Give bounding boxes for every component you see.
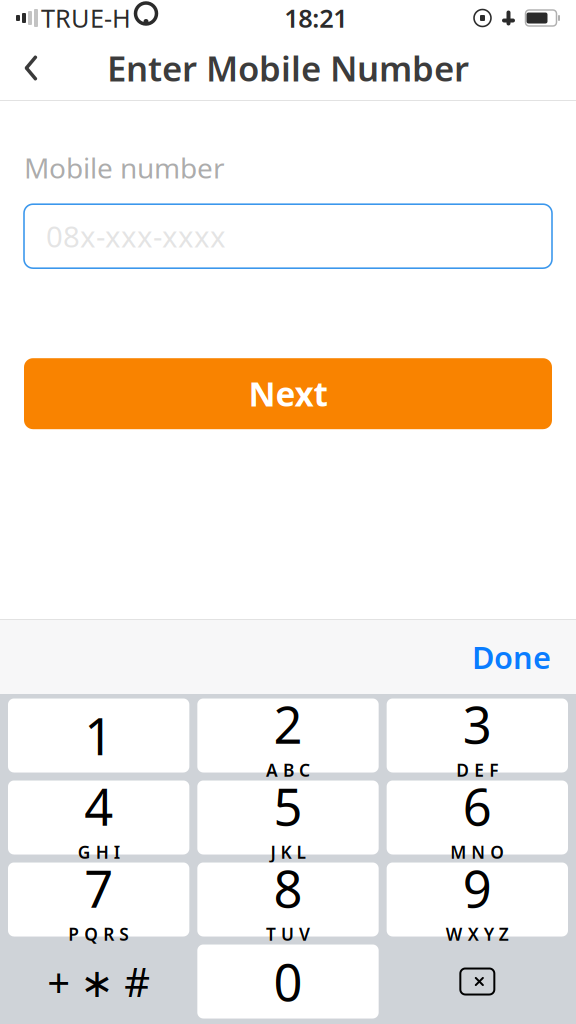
staticText: Next: [248, 372, 327, 416]
button[interactable]: Next: [24, 358, 552, 429]
staticText: W X Y Z: [446, 923, 509, 946]
staticText: 18:21: [284, 1, 347, 35]
staticText: G H I: [78, 841, 120, 864]
button[interactable]: Back: [0, 37, 62, 99]
staticText: 3: [463, 690, 492, 758]
staticText: P Q R S: [68, 923, 129, 946]
staticText: Enter Mobile Number: [107, 45, 469, 91]
staticText: Mobile number: [24, 149, 225, 186]
button[interactable]: 4: [8, 780, 189, 854]
button[interactable]: 7: [8, 862, 189, 936]
button[interactable]: 5: [197, 780, 379, 854]
staticText: M N O: [450, 841, 504, 864]
button[interactable]: Delete: [387, 944, 568, 1018]
button[interactable]: 3: [387, 698, 568, 772]
staticText: 7: [84, 854, 113, 922]
button[interactable]: 9: [387, 862, 568, 936]
staticText: A B C: [266, 759, 310, 782]
staticText: TRUE-H: [41, 1, 131, 35]
staticText: 9: [463, 854, 492, 922]
button[interactable]: 2: [197, 698, 379, 772]
staticText: 4: [84, 772, 113, 840]
button[interactable]: Plus star hash: [8, 944, 189, 1018]
button[interactable]: 0: [197, 944, 379, 1018]
button[interactable]: 1: [8, 698, 189, 772]
staticText: T U V: [266, 923, 310, 946]
staticText: 1: [84, 702, 113, 769]
staticText: 8: [273, 854, 302, 922]
button[interactable]: 6: [387, 780, 568, 854]
staticText: D E F: [456, 759, 498, 782]
staticText: Done: [472, 637, 551, 677]
button[interactable]: 8: [197, 862, 379, 936]
staticText: 08x-xxx-xxxx: [46, 217, 226, 256]
button[interactable]: Done: [458, 627, 565, 687]
staticText: 6: [463, 772, 492, 840]
staticText: J K L: [270, 841, 305, 864]
staticText: + ∗ #: [47, 955, 150, 1008]
staticText: 5: [273, 772, 302, 840]
staticText: 0: [273, 948, 302, 1015]
staticText: 2: [273, 690, 302, 758]
